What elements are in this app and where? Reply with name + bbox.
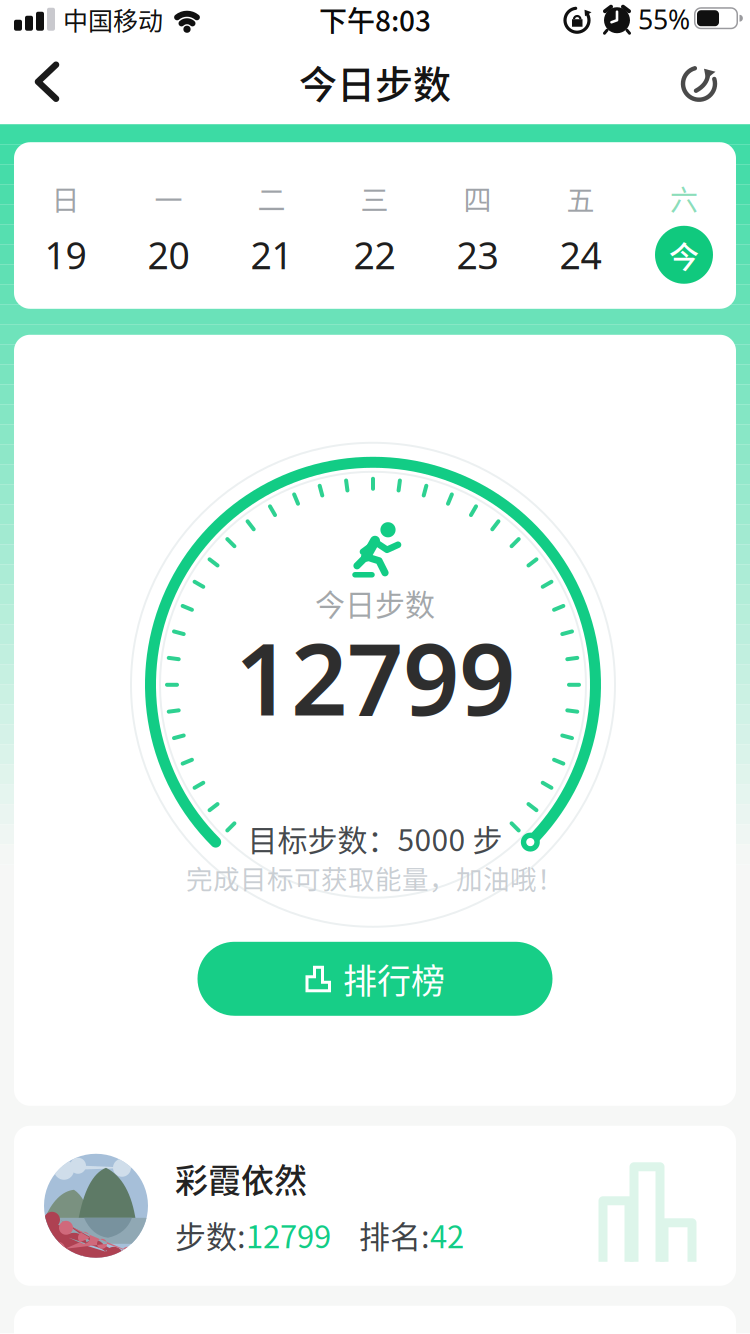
staticText: 19 [44,230,86,280]
button[interactable]: 今 [632,226,736,284]
staticText: 55% [638,1,690,37]
staticText: 目标步数：5000 步 [247,817,502,860]
button[interactable]: 20 [117,226,220,284]
staticText: 下午8:03 [319,0,431,39]
staticText: 21 [250,230,292,280]
staticText: 六 [670,178,698,219]
staticText: 23 [456,230,498,280]
staticText: 中国移动 [63,1,163,37]
staticText: 今 [669,233,699,276]
staticText: 12799 [246,1212,331,1257]
staticText: 完成目标可获取能量，加油哦！ [186,859,564,897]
button[interactable]: 23 [426,226,529,284]
staticText: 彩霞依然 [175,1154,307,1202]
button[interactable]: 返回 [26,60,70,104]
button[interactable]: 21 [220,226,323,284]
staticText: 今日步数 [299,54,451,109]
staticText: 42 [430,1212,464,1257]
staticText: 今日步数 [315,581,435,624]
button[interactable]: 22 [323,226,426,284]
staticText: 排行榜 [343,954,445,1003]
staticText: 24 [559,230,601,280]
button[interactable]: 19 [14,226,117,284]
staticText: 22 [353,230,395,280]
button[interactable]: 24 [529,226,632,284]
staticText: 一 [154,178,182,219]
staticText: 20 [147,230,189,280]
button[interactable]: 刷新 [680,60,724,104]
staticText: 日 [51,178,79,219]
staticText: 排名: [359,1212,430,1257]
button[interactable]: 彩霞依然 步数 12799 排名 42 [14,1126,736,1286]
button[interactable]: 排行榜 [197,942,552,1016]
staticText: 五 [566,178,594,219]
staticText: 12799 [235,612,515,743]
staticText: 二 [257,178,285,219]
staticText: 三 [360,178,388,219]
staticText: 四 [463,178,491,219]
staticText: 步数: [175,1212,246,1257]
